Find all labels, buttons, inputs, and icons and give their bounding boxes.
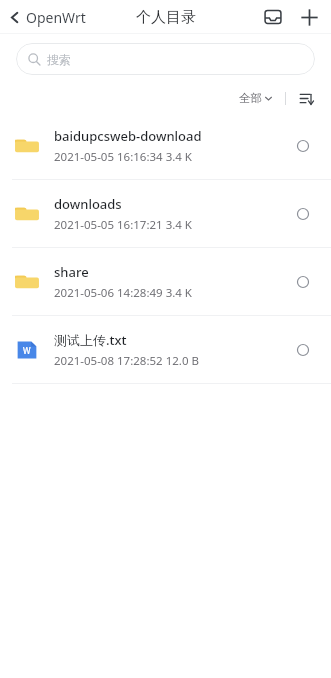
button[interactable]: share <box>0 248 331 315</box>
staticText: 测试上传.txt <box>54 331 127 349</box>
staticText: share <box>54 263 89 281</box>
button[interactable]: Add <box>293 1 325 33</box>
button[interactable]: Select <box>289 200 317 228</box>
button[interactable]: OpenWrt <box>0 4 94 31</box>
staticText: OpenWrt <box>26 8 86 27</box>
button[interactable]: Select <box>289 132 317 160</box>
staticText: W <box>23 345 31 356</box>
button[interactable]: Select <box>289 268 317 296</box>
staticText: 搜索 <box>47 52 71 67</box>
button[interactable]: Select <box>289 336 317 364</box>
staticText: 个人目录 <box>136 8 196 27</box>
staticText: 2021-05-05 16:17:21 3.4 K <box>54 217 192 233</box>
button[interactable]: 全部 <box>235 88 276 108</box>
button[interactable]: downloads <box>0 180 331 247</box>
staticText: 全部 <box>239 91 262 105</box>
staticText: 2021-05-08 17:28:52 12.0 B <box>54 353 199 369</box>
button[interactable]: baidupcsweb-download <box>0 112 331 179</box>
staticText: 2021-05-06 14:28:49 3.4 K <box>54 285 192 301</box>
button[interactable]: Transfers <box>257 1 289 33</box>
staticText: baidupcsweb-download <box>54 127 202 145</box>
button[interactable]: Sort <box>295 87 317 109</box>
staticText: 2021-05-05 16:16:34 3.4 K <box>54 149 192 165</box>
button[interactable]: 搜索 <box>16 43 315 75</box>
staticText: downloads <box>54 195 122 213</box>
button[interactable]: W <box>0 316 331 383</box>
